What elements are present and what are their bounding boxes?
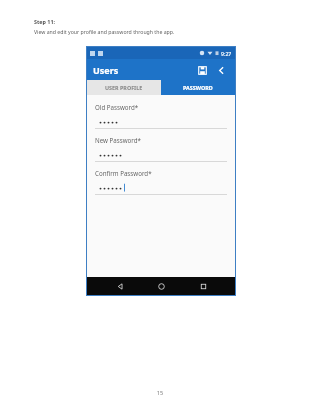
- staticText: New Password*: [95, 136, 141, 144]
- staticText: Confirm Password*: [95, 169, 152, 177]
- staticText: 15: [0, 389, 320, 396]
- button[interactable]: Back: [111, 277, 129, 295]
- button[interactable]: Recent apps: [194, 277, 212, 295]
- staticText: 9:27: [221, 50, 232, 57]
- button[interactable]: Save: [194, 62, 210, 78]
- button[interactable]: USER PROFILE: [87, 80, 161, 95]
- staticText: USER PROFILE: [105, 84, 143, 91]
- staticText: Users: [93, 64, 119, 76]
- staticText: Old Password*: [95, 103, 139, 111]
- button[interactable]: Old Password*: [95, 103, 227, 129]
- staticText: View and edit your profile and password …: [34, 28, 175, 35]
- staticText: PASSWORD: [183, 84, 213, 91]
- staticText: Step 11:: [34, 18, 56, 25]
- button[interactable]: Back: [213, 62, 229, 78]
- button[interactable]: Confirm Password*: [95, 169, 227, 195]
- button[interactable]: New Password*: [95, 136, 227, 162]
- button[interactable]: PASSWORD: [161, 80, 235, 95]
- button[interactable]: Home: [152, 277, 170, 295]
